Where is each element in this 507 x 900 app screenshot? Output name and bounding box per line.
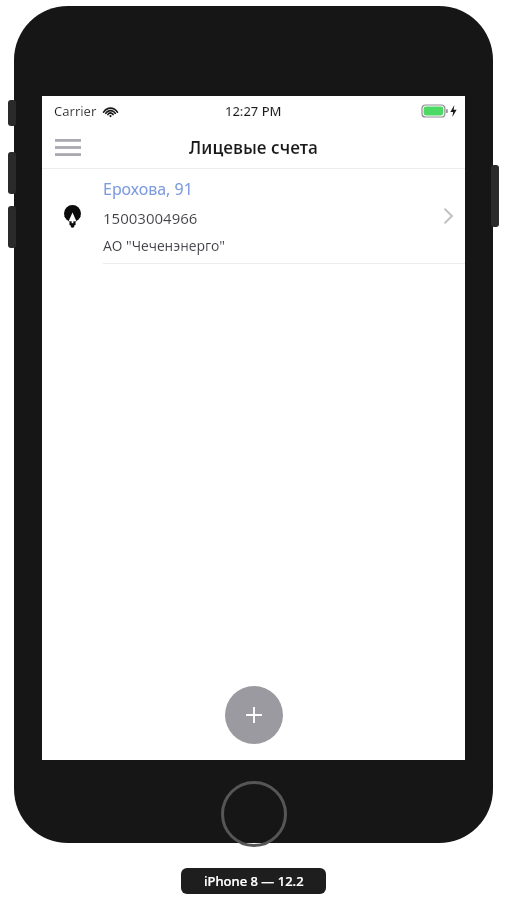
staticText: Лицевые счета	[189, 136, 318, 159]
other: Power	[491, 165, 499, 227]
button[interactable]: Add account	[225, 686, 283, 744]
staticText: Carrier	[54, 102, 97, 120]
staticText: Ерохова, 91	[103, 178, 193, 200]
button[interactable]: Menu	[48, 127, 88, 167]
staticText: 12:27 PM	[225, 102, 282, 120]
button[interactable]: Ерохова, 91	[42, 169, 465, 263]
staticText: АО "Чеченэнерго"	[103, 236, 225, 255]
staticText: iPhone 8 — 12.2	[204, 872, 304, 890]
staticText: 15003004966	[103, 208, 198, 228]
other: Home	[221, 781, 287, 847]
other: Silent switch	[8, 100, 16, 126]
other: Volume down	[8, 206, 16, 248]
other: Volume up	[8, 152, 16, 194]
